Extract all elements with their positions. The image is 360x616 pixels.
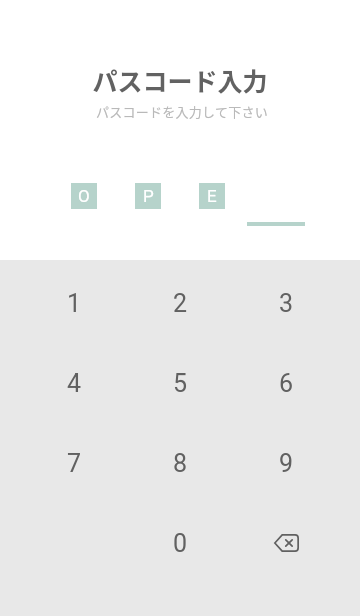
button[interactable]: Backspace [233, 503, 339, 583]
staticText: パスコード入力 [0, 62, 360, 98]
staticText: 6 [279, 369, 294, 398]
staticText: P [143, 186, 154, 206]
button[interactable]: 1 [21, 263, 127, 343]
staticText: 7 [67, 449, 82, 478]
button[interactable]: P [135, 183, 161, 209]
staticText: 0 [173, 529, 188, 558]
button[interactable]: 6 [233, 343, 339, 423]
staticText: 8 [173, 449, 188, 478]
button[interactable]: O [71, 183, 97, 209]
button[interactable]: 7 [21, 423, 127, 503]
staticText: O [78, 186, 90, 206]
staticText: 5 [173, 369, 188, 398]
staticText: 9 [279, 449, 294, 478]
button[interactable]: 5 [127, 343, 233, 423]
button[interactable]: 8 [127, 423, 233, 503]
button[interactable]: 2 [127, 263, 233, 343]
staticText: パスコードを入力して下さい [2, 102, 360, 121]
staticText: 2 [173, 289, 188, 318]
staticText: 3 [279, 289, 294, 318]
staticText: 4 [67, 369, 82, 398]
button[interactable]: E [199, 183, 225, 209]
staticText: 1 [67, 289, 82, 318]
button[interactable]: 9 [233, 423, 339, 503]
button[interactable]: 4 [21, 343, 127, 423]
button[interactable]: 3 [233, 263, 339, 343]
staticText: E [207, 186, 217, 206]
button[interactable]: 0 [127, 503, 233, 583]
